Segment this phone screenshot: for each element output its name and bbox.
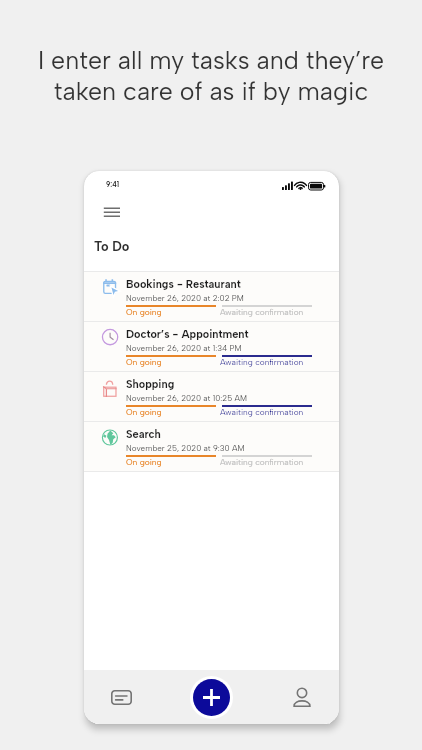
staticText: taken care of as if by magic <box>0 76 422 106</box>
staticText: On going <box>126 457 162 467</box>
staticText: Awaiting confirmation <box>220 307 304 317</box>
staticText: On going <box>126 357 162 367</box>
staticText: Bookings - Restaurant <box>126 278 241 291</box>
button[interactable]: Tasks <box>100 676 142 718</box>
staticText: To Do <box>94 239 130 255</box>
staticText: Doctor’s - Appointment <box>126 328 249 341</box>
staticText: November 26, 2020 at 2:02 PM <box>126 293 244 303</box>
staticText: November 25, 2020 at 9:30 AM <box>126 443 245 453</box>
staticText: Search <box>126 428 161 441</box>
staticText: On going <box>126 407 162 417</box>
staticText: Awaiting confirmation <box>220 357 304 367</box>
staticText: Awaiting confirmation <box>220 457 304 467</box>
button[interactable]: Shopping <box>84 372 339 421</box>
staticText: Awaiting confirmation <box>220 407 304 417</box>
button[interactable]: Bookings - Restaurant <box>84 272 339 321</box>
button[interactable]: Add task <box>193 679 230 716</box>
button[interactable]: Profile <box>281 676 323 718</box>
staticText: November 26, 2020 at 10:25 AM <box>126 393 247 403</box>
button[interactable]: Menu <box>96 198 128 230</box>
staticText: November 26, 2020 at 1:34 PM <box>126 343 242 353</box>
staticText: On going <box>126 307 162 317</box>
staticText: 9:41 <box>106 180 120 188</box>
staticText: Shopping <box>126 378 175 391</box>
button[interactable]: Search <box>84 422 339 471</box>
button[interactable]: Doctor’s - Appointment <box>84 322 339 371</box>
staticText: I enter all my tasks and they’re <box>0 45 422 75</box>
